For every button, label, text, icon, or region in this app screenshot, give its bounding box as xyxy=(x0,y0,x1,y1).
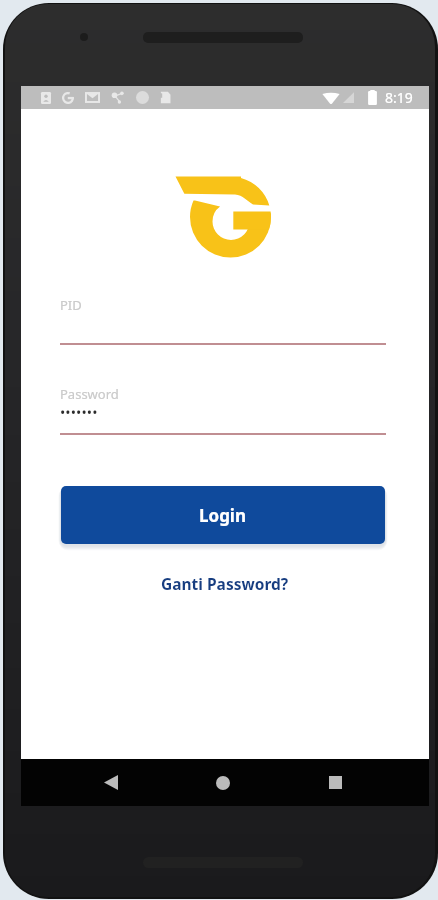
staticText: 8:19 xyxy=(385,88,413,107)
button[interactable]: Back xyxy=(90,759,132,806)
button[interactable]: Login xyxy=(61,486,385,544)
button[interactable]: Ganti Password? xyxy=(153,569,297,598)
staticText: PID xyxy=(60,296,82,314)
staticText: Ganti Password? xyxy=(161,573,289,594)
button[interactable]: Recent apps xyxy=(314,759,356,806)
staticText: Password xyxy=(60,385,119,403)
staticText: Login xyxy=(199,504,247,527)
staticText: ••••••• xyxy=(60,403,98,422)
button[interactable]: Home xyxy=(202,759,244,806)
